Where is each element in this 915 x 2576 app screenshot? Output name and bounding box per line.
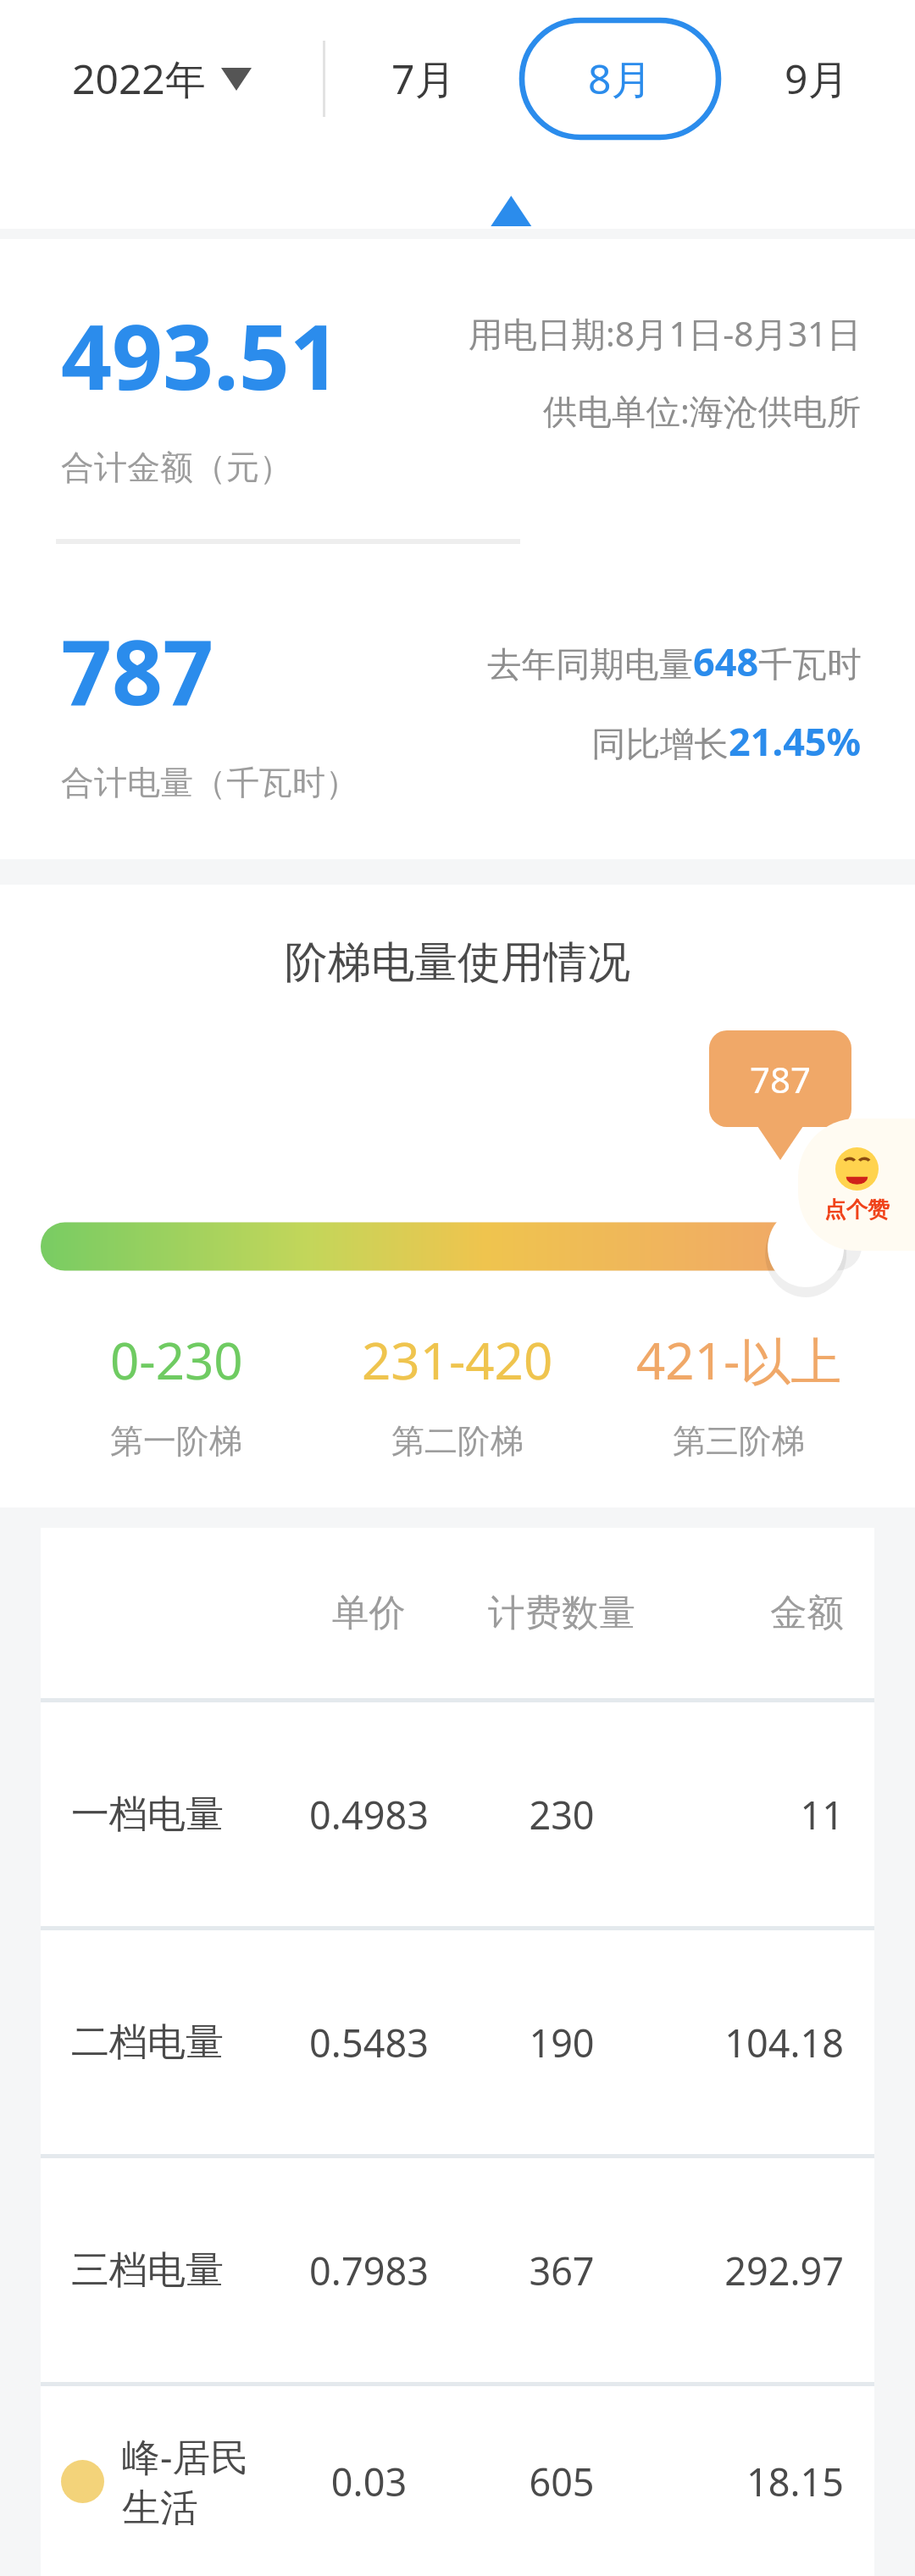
staticText: 8月 <box>588 51 652 107</box>
staticText: 金额 <box>666 1590 844 1636</box>
staticText: 421-以上 <box>636 1325 842 1395</box>
staticText: 供电单位:海沧供电所 <box>543 387 862 434</box>
staticText: 第三阶梯 <box>673 1420 805 1462</box>
staticText: 二档电量 <box>71 2018 224 2067</box>
button[interactable]: 峰-居民生活 <box>41 2386 874 2576</box>
staticText: 11 <box>666 1789 844 1840</box>
staticText: 合计金额（元） <box>61 447 292 488</box>
staticText: 367 <box>457 2245 666 2296</box>
staticText: 第二阶梯 <box>391 1420 524 1462</box>
staticText: 阶梯电量使用情况 <box>285 935 630 990</box>
staticText: 7月 <box>391 51 456 107</box>
staticText: 点个赞 <box>824 1196 890 1223</box>
staticText: 18.15 <box>666 2456 844 2507</box>
staticText: 0.7983 <box>280 2245 457 2296</box>
button[interactable]: 一档电量 <box>41 1702 874 1926</box>
staticText: 合计电量（千瓦时） <box>61 762 358 803</box>
staticText: 292.97 <box>666 2245 844 2296</box>
staticText: 第一阶梯 <box>110 1420 242 1462</box>
staticText: 104.18 <box>666 2017 844 2068</box>
staticText: 231-420 <box>362 1325 553 1395</box>
button[interactable]: 7月 <box>325 20 522 137</box>
staticText: 一档电量 <box>71 1790 224 1839</box>
staticText: 493.51 <box>61 295 341 416</box>
staticText: 单价 <box>280 1590 457 1636</box>
staticText: 787 <box>61 610 214 731</box>
staticText: 787 <box>750 1055 812 1103</box>
button[interactable]: 8月 <box>522 20 718 137</box>
staticText: 计费数量 <box>457 1590 666 1636</box>
staticText: 0.03 <box>280 2456 457 2507</box>
staticText: 三档电量 <box>71 2246 224 2295</box>
staticText: 190 <box>457 2017 666 2068</box>
button[interactable]: 三档电量 <box>41 2158 874 2382</box>
staticText: 峰-居民生活 <box>122 2430 280 2532</box>
staticText: 0.5483 <box>280 2017 457 2068</box>
staticText: 0.4983 <box>280 1789 457 1840</box>
button[interactable]: 二档电量 <box>41 1930 874 2154</box>
staticText: 2022年 <box>72 51 206 107</box>
staticText: 用电日期:8月1日-8月31日 <box>469 310 862 357</box>
staticText: 去年同期电量648千瓦时 <box>487 636 862 687</box>
staticText: 230 <box>457 1789 666 1840</box>
button[interactable]: 9月 <box>718 20 915 137</box>
staticText: 605 <box>457 2456 666 2507</box>
staticText: 9月 <box>785 51 849 107</box>
button[interactable]: 2022年 <box>0 0 323 158</box>
staticText: 同比增长21.45% <box>591 715 862 767</box>
staticText: 0-230 <box>110 1325 243 1395</box>
button[interactable]: 点个赞 <box>798 1119 915 1251</box>
